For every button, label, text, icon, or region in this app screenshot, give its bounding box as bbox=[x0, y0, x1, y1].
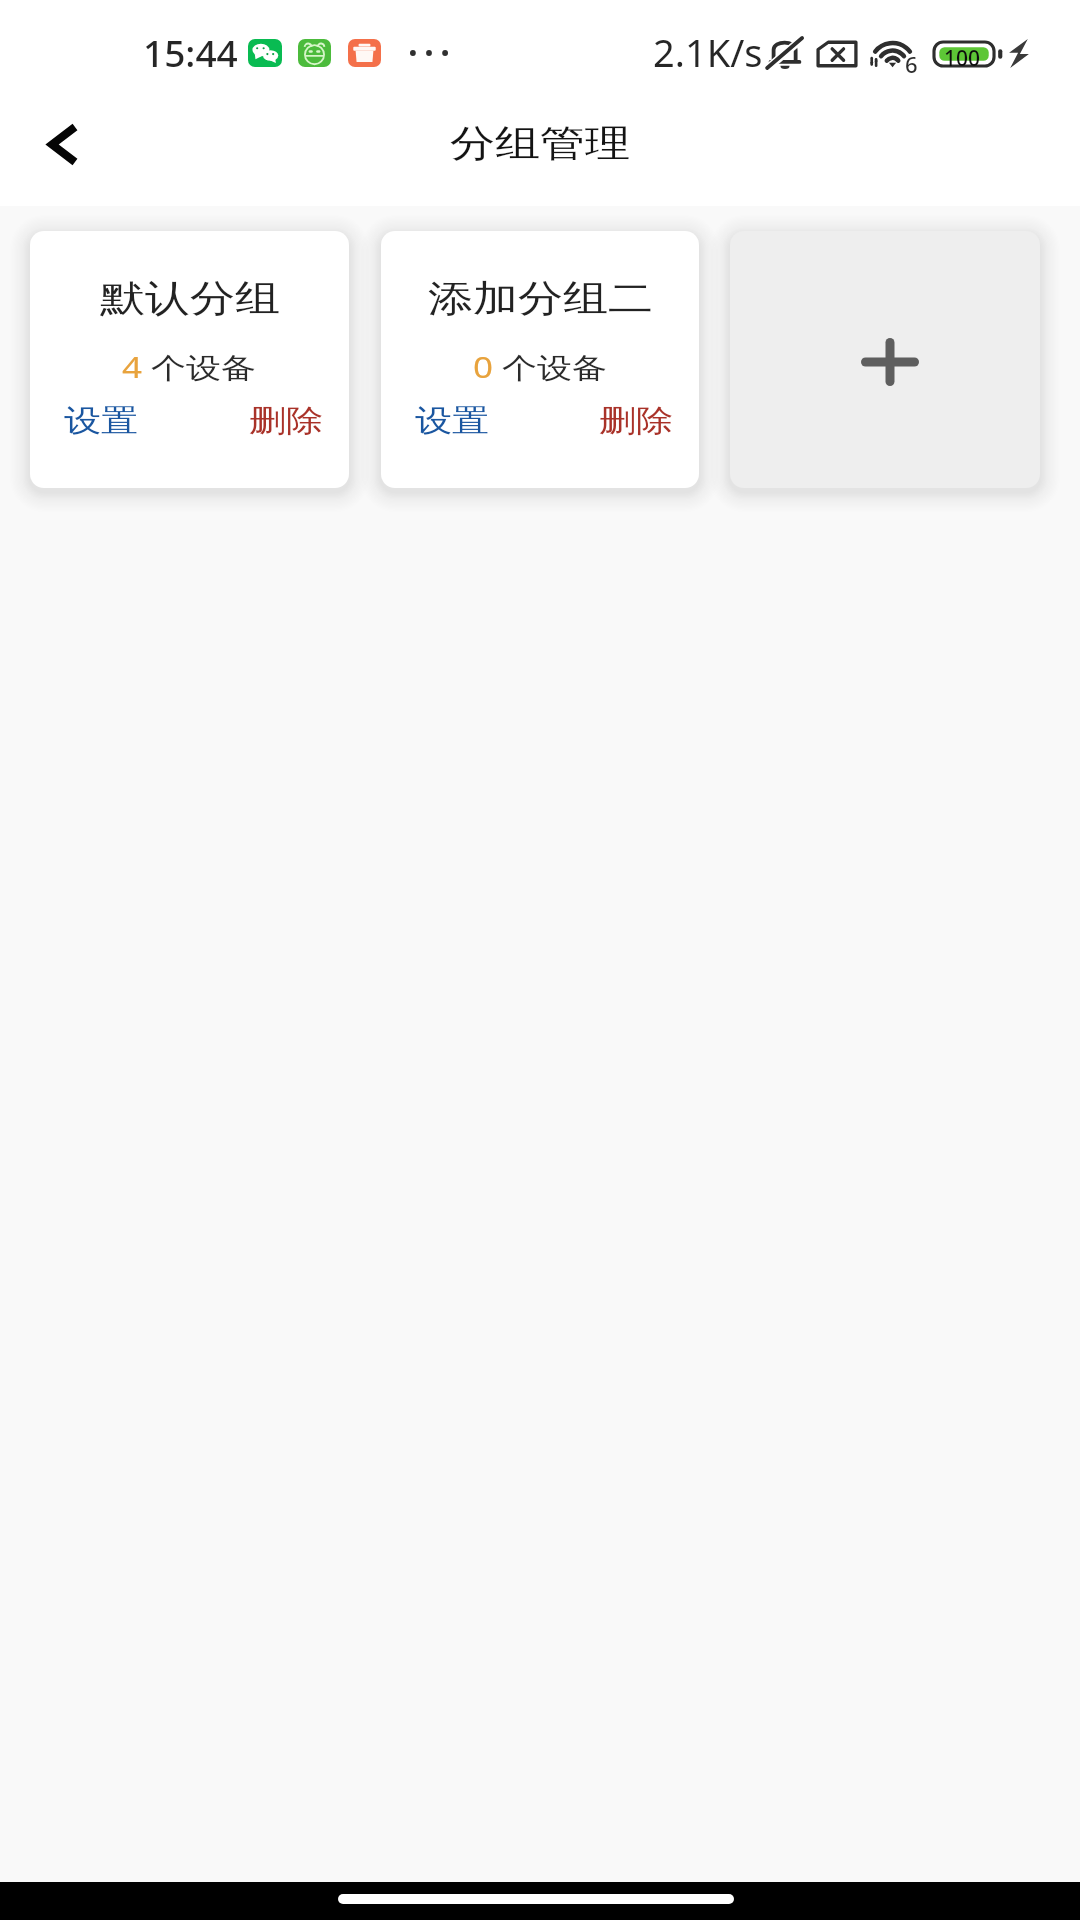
button[interactable]: 删除 bbox=[589, 391, 683, 450]
staticText: 100 bbox=[944, 44, 981, 68]
staticText: 删除 bbox=[249, 401, 323, 440]
staticText: 默认分组 bbox=[100, 276, 280, 323]
staticText: 删除 bbox=[599, 401, 673, 440]
staticText: 设置 bbox=[64, 401, 138, 440]
button[interactable]: 默认分组 bbox=[30, 231, 349, 488]
staticText: 设置 bbox=[415, 401, 489, 440]
staticText: 添加分组二 bbox=[428, 276, 653, 323]
staticText: 2.1K/s bbox=[653, 26, 763, 78]
staticText: 15:44 bbox=[143, 27, 238, 77]
button[interactable]: 设置 bbox=[405, 391, 499, 450]
staticText: 分组管理 bbox=[450, 121, 630, 168]
button[interactable]: 添加分组二 bbox=[381, 231, 699, 488]
staticText: 6 bbox=[905, 49, 918, 79]
button[interactable]: 删除 bbox=[239, 391, 333, 450]
staticText: 0 个设备 bbox=[473, 347, 608, 387]
button[interactable]: 设置 bbox=[54, 391, 148, 450]
staticText: 4 个设备 bbox=[122, 347, 257, 387]
button[interactable]: Add group bbox=[730, 231, 1040, 488]
button[interactable]: Back bbox=[21, 99, 105, 189]
